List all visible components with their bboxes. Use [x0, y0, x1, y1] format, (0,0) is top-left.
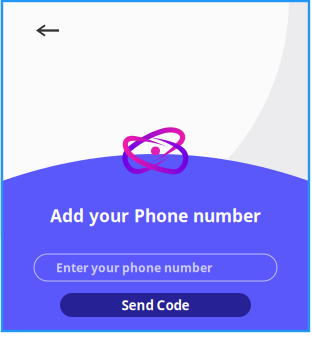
staticText: Add your Phone number [50, 204, 261, 227]
button[interactable]: Send Code [60, 293, 251, 317]
button[interactable]: Back [24, 12, 71, 49]
staticText: Enter your phone number [56, 259, 212, 275]
staticText: Send Code [121, 296, 189, 314]
